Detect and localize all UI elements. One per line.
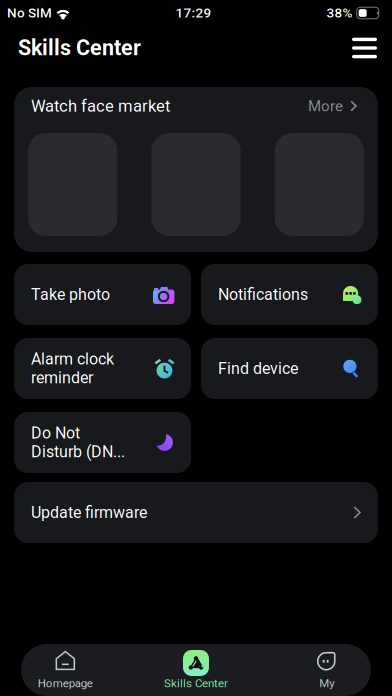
staticText: Do Not Disturb (DN... bbox=[31, 424, 125, 461]
button[interactable]: Notifications bbox=[201, 264, 378, 325]
button[interactable]: Alarm clock reminder bbox=[14, 338, 191, 399]
staticText: More bbox=[308, 97, 343, 115]
button[interactable]: Menu bbox=[333, 28, 377, 68]
staticText: No SIM bbox=[7, 5, 52, 21]
staticText: Find device bbox=[218, 359, 298, 378]
staticText: Homepage bbox=[38, 676, 93, 690]
staticText: Skills Center bbox=[164, 676, 228, 690]
button[interactable]: More bbox=[308, 97, 357, 115]
staticText: Update firmware bbox=[31, 503, 147, 522]
button[interactable]: Update firmware bbox=[14, 482, 378, 543]
staticText: 38% bbox=[326, 5, 352, 21]
staticText: Notifications bbox=[218, 285, 308, 304]
staticText: Alarm clock reminder bbox=[31, 350, 114, 387]
staticText: Take photo bbox=[31, 285, 110, 304]
staticText: My bbox=[319, 676, 334, 690]
button[interactable]: Do Not Disturb (DN... bbox=[14, 412, 191, 473]
button[interactable]: Homepage bbox=[0, 644, 131, 696]
staticText: Watch face market bbox=[31, 96, 170, 116]
button[interactable]: Skills Center bbox=[131, 644, 261, 696]
staticText: Skills Center bbox=[18, 35, 141, 61]
button[interactable]: Find device bbox=[201, 338, 378, 399]
button[interactable]: My bbox=[261, 644, 392, 696]
staticText: 17:29 bbox=[175, 5, 211, 21]
button[interactable]: Take photo bbox=[14, 264, 191, 325]
